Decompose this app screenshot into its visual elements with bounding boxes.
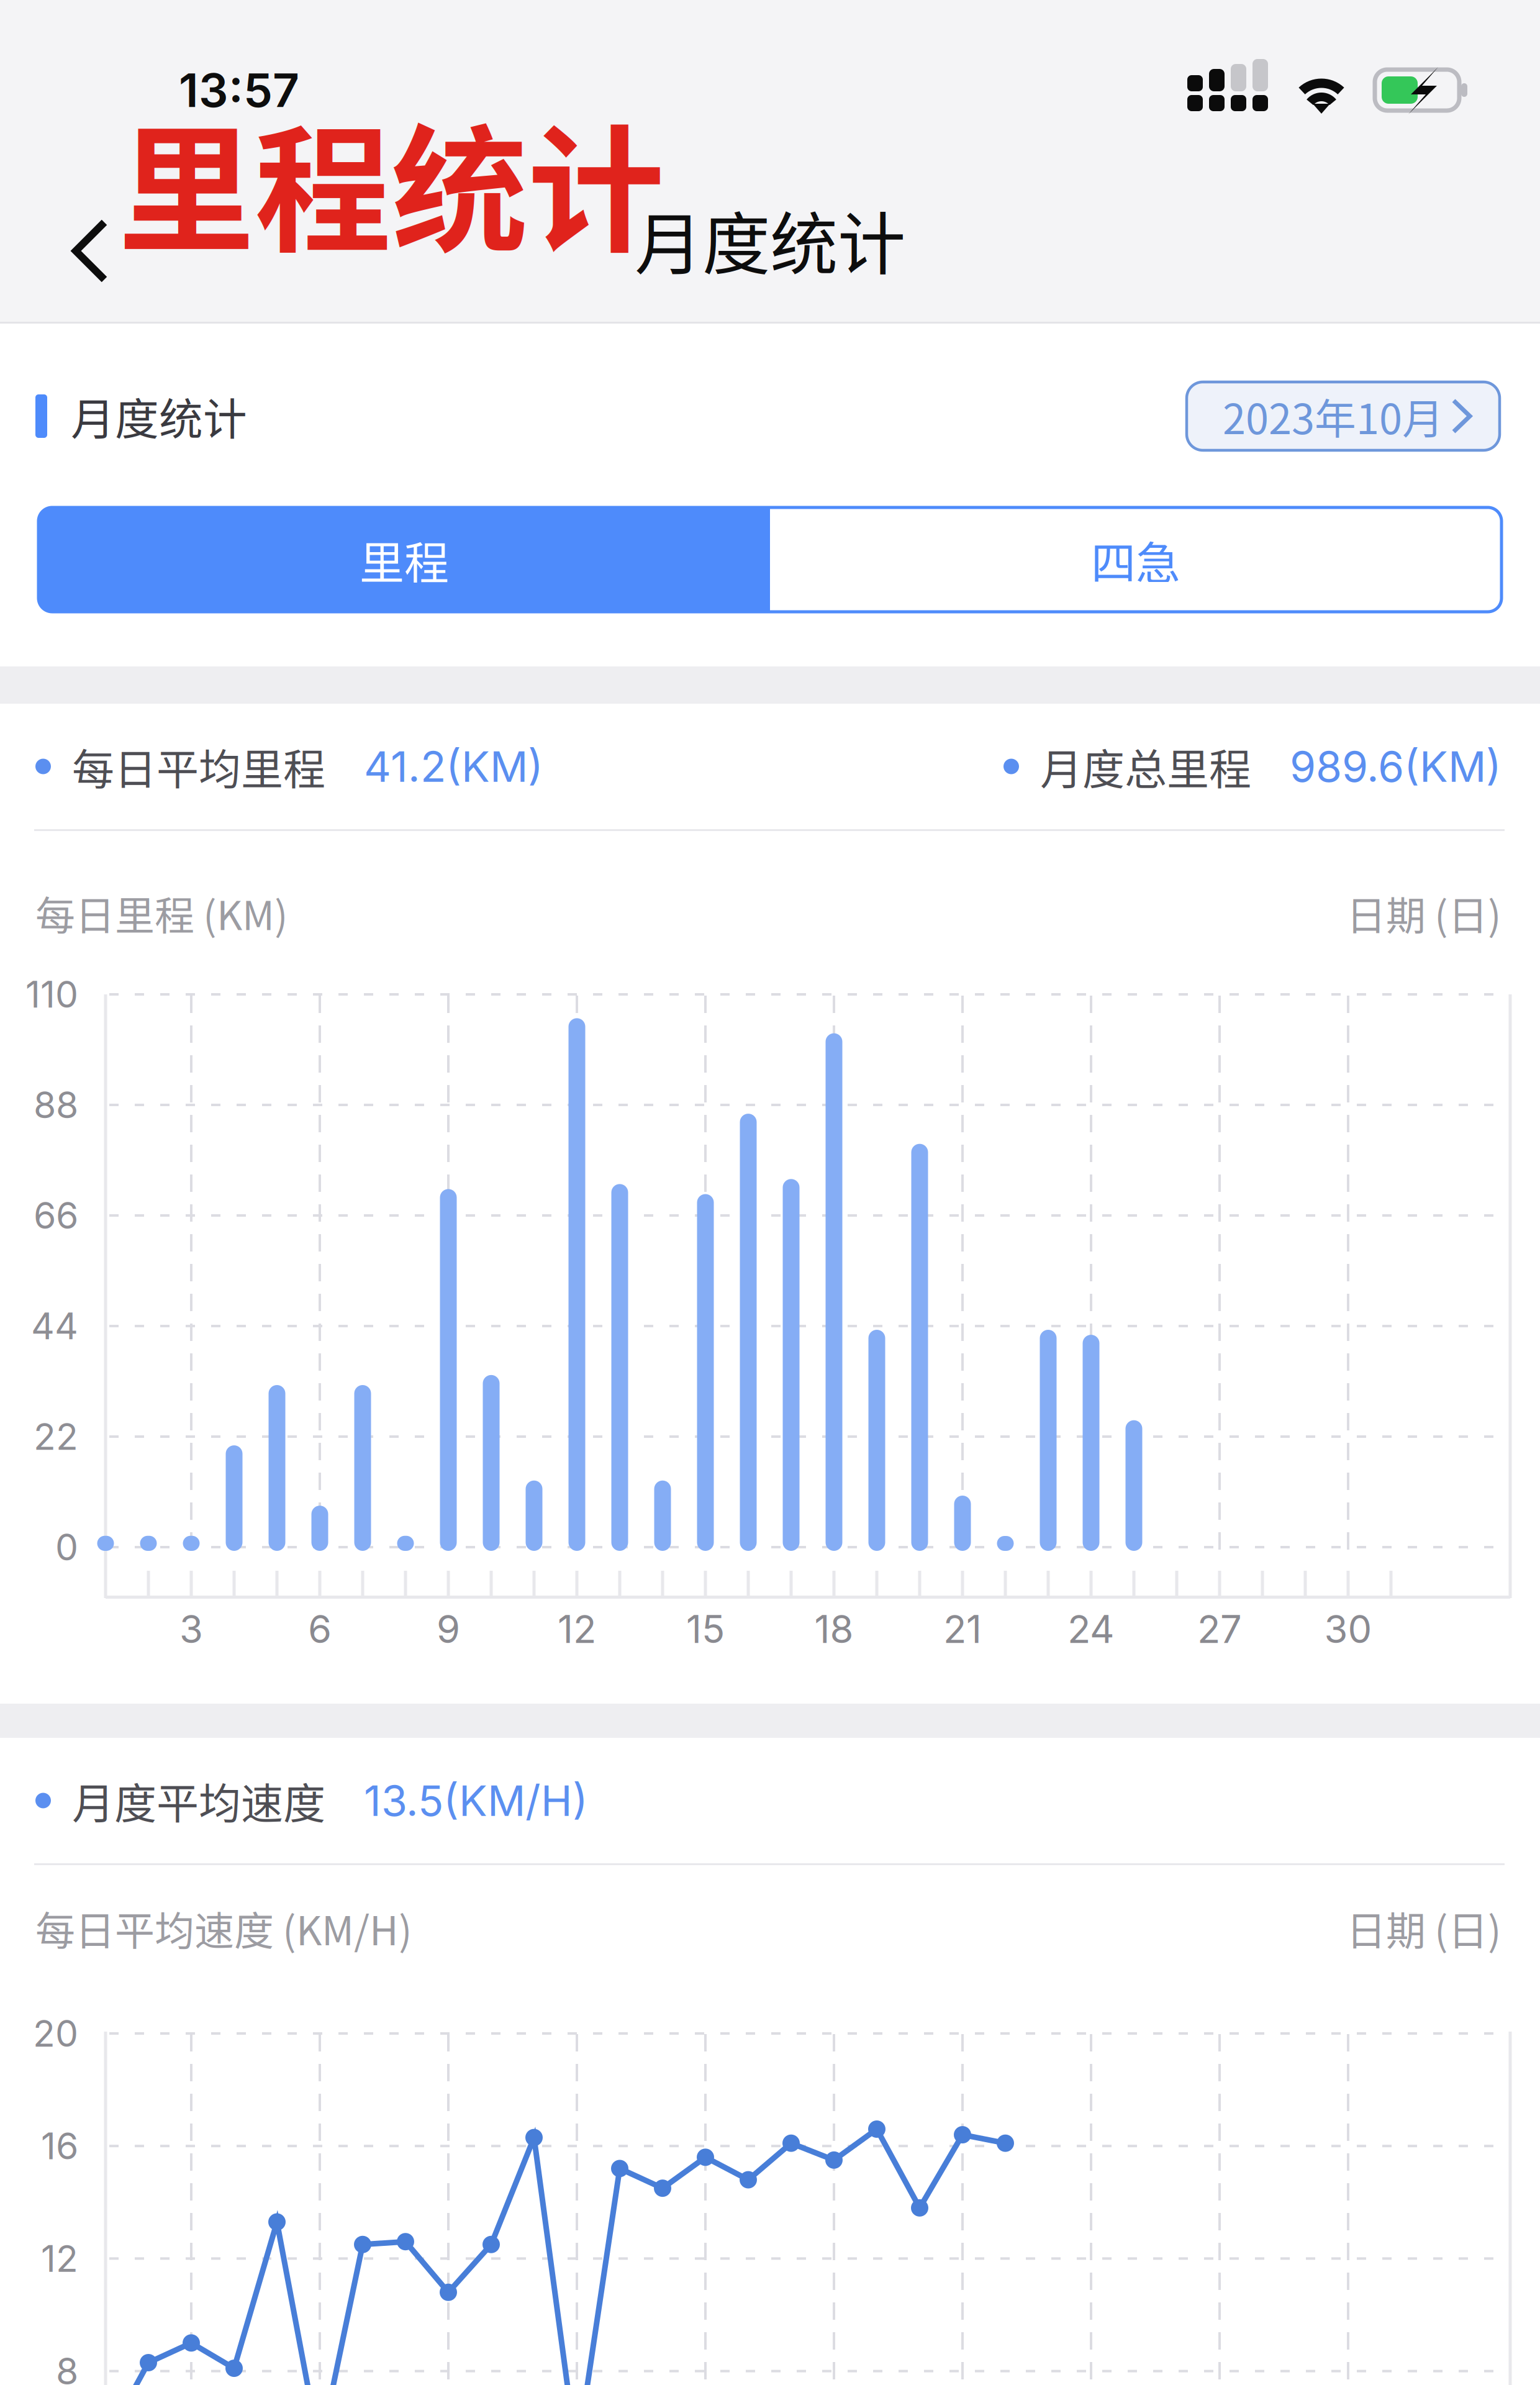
staticText: 88 — [34, 1083, 78, 1127]
staticText: 月度统计 — [635, 190, 905, 288]
staticText: 989.6(KM) — [1290, 741, 1501, 792]
staticText: 66 — [34, 1193, 78, 1238]
staticText: 13:57 — [179, 62, 299, 118]
staticText: 15 — [686, 1606, 725, 1652]
staticText: 日期 (日) — [1346, 884, 1501, 942]
button[interactable]: 四急 — [770, 507, 1501, 612]
staticText: 8 — [56, 2349, 78, 2385]
staticText: 里程统计 — [118, 82, 664, 280]
staticText: 2023年10月 — [1223, 386, 1444, 446]
staticText: 12 — [41, 2236, 78, 2281]
staticText: 110 — [25, 972, 78, 1016]
staticText: 每日里程 (KM) — [35, 884, 288, 942]
staticText: 13.5(KM/H) — [364, 1775, 588, 1826]
staticText: 3 — [179, 1606, 203, 1652]
button[interactable]: 里程 — [38, 507, 770, 612]
staticText: 41.2(KM) — [364, 741, 543, 792]
staticText: 44 — [31, 1304, 78, 1348]
staticText: 21 — [943, 1606, 982, 1652]
staticText: 日期 (日) — [1346, 1899, 1501, 1957]
staticText: 每日平均速度 (KM/H) — [35, 1899, 412, 1957]
staticText: 30 — [1324, 1606, 1372, 1652]
staticText: 月度平均速度 — [72, 1770, 325, 1831]
staticText: 月度统计 — [71, 384, 247, 448]
staticText: 6 — [308, 1606, 332, 1652]
button[interactable]: Back — [0, 200, 149, 302]
staticText: 27 — [1197, 1606, 1242, 1652]
staticText: 每日平均里程 — [72, 736, 325, 797]
staticText: 0 — [55, 1525, 78, 1569]
staticText: 9 — [437, 1606, 460, 1652]
staticText: 20 — [33, 2011, 78, 2056]
button[interactable]: 2023年10月 — [1187, 382, 1500, 450]
staticText: 22 — [34, 1415, 78, 1459]
staticText: 月度总里程 — [1040, 736, 1251, 797]
staticText: 里程 — [360, 527, 449, 592]
staticText: 四急 — [1091, 527, 1180, 592]
staticText: 16 — [41, 2124, 78, 2168]
staticText: 12 — [558, 1606, 596, 1652]
staticText: 24 — [1067, 1606, 1115, 1652]
staticText: 18 — [814, 1606, 854, 1652]
